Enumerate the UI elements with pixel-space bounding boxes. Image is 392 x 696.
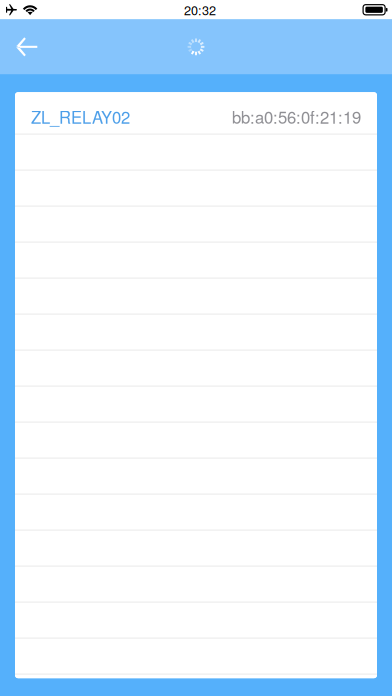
staticText: bb:a0:56:0f:21:19 — [232, 104, 361, 128]
button[interactable]: ZL_RELAY02 — [15, 92, 377, 135]
staticText: ZL_RELAY02 — [31, 104, 130, 128]
button[interactable]: Back — [0, 25, 51, 68]
staticText: 20:32 — [184, 1, 216, 19]
